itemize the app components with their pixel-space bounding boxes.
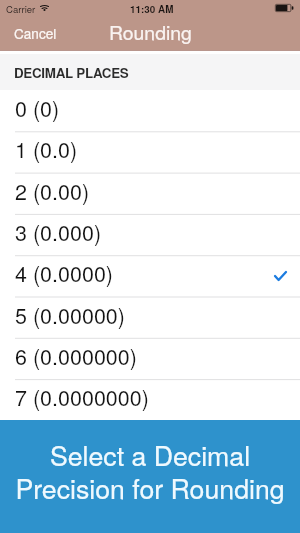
button[interactable]: 6 (0.000000) (0, 338, 300, 379)
staticText: 1 (0.0) (15, 133, 78, 164)
button[interactable]: 4 (0.0000) (0, 255, 300, 296)
staticText: 11:30 AM (130, 2, 174, 16)
other: Selected (275, 272, 286, 280)
button[interactable]: Select a Decimal Precision for Rounding (0, 420, 300, 533)
button[interactable]: 1 (0.0) (0, 131, 300, 172)
staticText: 6 (0.000000) (15, 340, 137, 371)
staticText: Carrier (6, 2, 36, 16)
button[interactable]: Cancel (0, 21, 69, 45)
button[interactable]: 5 (0.00000) (0, 297, 300, 338)
staticText: 3 (0.000) (15, 216, 102, 247)
staticText: DECIMAL PLACES (14, 63, 129, 82)
button[interactable]: 2 (0.00) (0, 173, 300, 214)
staticText: 4 (0.0000) (15, 257, 113, 288)
staticText: 7 (0.0000000) (15, 381, 149, 412)
staticText: 2 (0.00) (15, 175, 90, 206)
button[interactable]: 7 (0.0000000) (0, 379, 300, 420)
staticText: Cancel (14, 23, 57, 42)
staticText: Select a Decimal Precision for Rounding (15, 435, 285, 507)
button[interactable]: 3 (0.000) (0, 214, 300, 255)
staticText: 0 (0) (15, 92, 60, 123)
staticText: 5 (0.00000) (15, 299, 125, 330)
button[interactable]: 0 (0) (0, 90, 300, 131)
staticText: Rounding (109, 18, 192, 46)
